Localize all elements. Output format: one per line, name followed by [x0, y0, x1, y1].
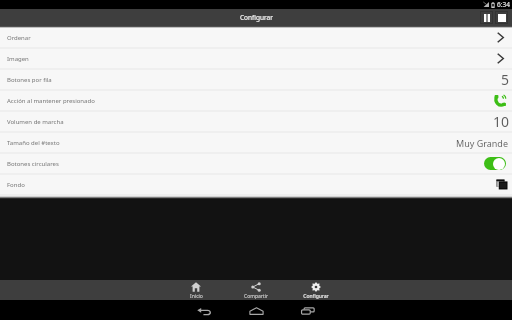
button[interactable]: Home: [230, 300, 282, 320]
button[interactable]: Botones circulares toggle: [484, 157, 506, 170]
button[interactable]: Ordenar: [0, 28, 512, 49]
button[interactable]: Fondo: [0, 175, 512, 196]
staticText: Configurar: [240, 13, 273, 22]
staticText: Fondo: [7, 181, 25, 189]
button[interactable]: Compartir: [226, 280, 286, 300]
button[interactable]: Botones por fila: [0, 70, 512, 91]
button[interactable]: Imagen: [0, 49, 512, 70]
staticText: 5: [501, 70, 510, 89]
staticText: Imagen: [7, 55, 29, 63]
staticText: 10: [493, 112, 510, 131]
staticText: Botones por fila: [7, 76, 52, 84]
button[interactable]: Botones circulares: [0, 154, 512, 175]
button[interactable]: Recents: [282, 300, 334, 320]
button[interactable]: Configurar: [286, 280, 346, 300]
button[interactable]: Tamaño del #texto: [0, 133, 512, 154]
button[interactable]: Acción al mantener presionado: [0, 91, 512, 112]
button[interactable]: Volumen de marcha: [0, 112, 512, 133]
button[interactable]: Stop: [495, 11, 508, 24]
staticText: Inicio: [190, 293, 203, 300]
button[interactable]: Pause: [480, 11, 493, 24]
button[interactable]: Back: [178, 300, 230, 320]
staticText: Acción al mantener presionado: [7, 97, 95, 105]
staticText: Volumen de marcha: [7, 118, 64, 126]
staticText: Ordenar: [7, 34, 31, 42]
staticText: Compartir: [244, 293, 268, 300]
staticText: Botones circulares: [7, 160, 59, 168]
staticText: Tamaño del #texto: [7, 139, 60, 147]
staticText: 6:34: [497, 0, 510, 9]
button[interactable]: Inicio: [166, 280, 226, 300]
staticText: Configurar: [303, 293, 329, 300]
staticText: Muy Grande: [456, 137, 508, 149]
